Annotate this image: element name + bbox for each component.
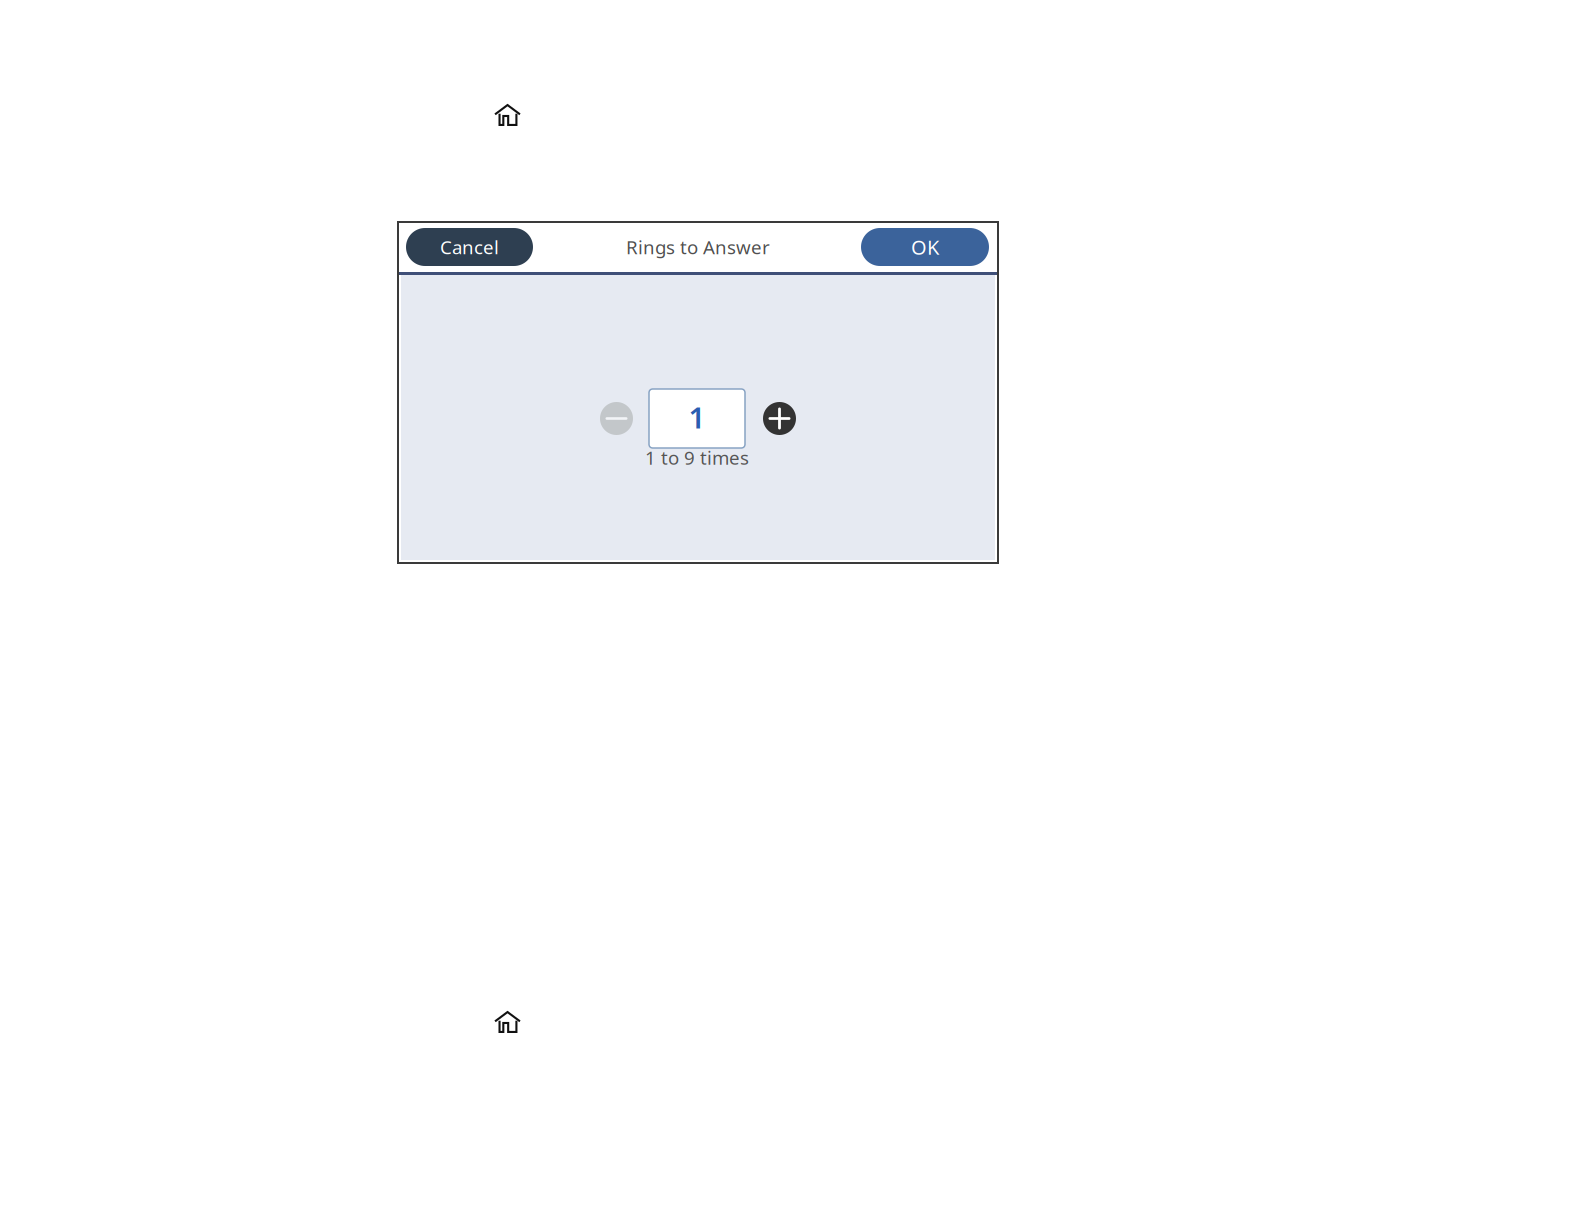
staticText: Rings to Answer <box>626 235 770 259</box>
button[interactable]: Decrease <box>600 402 633 435</box>
staticText: OK <box>911 234 939 260</box>
staticText: 1 to 9 times <box>645 445 749 470</box>
button[interactable]: Increase <box>763 402 796 435</box>
button[interactable]: OK <box>861 228 989 266</box>
staticText: 1 <box>688 397 705 436</box>
button[interactable]: Home <box>494 1011 521 1033</box>
button[interactable]: Cancel <box>406 228 533 266</box>
staticText: Cancel <box>440 235 499 259</box>
button[interactable]: Home <box>494 104 521 126</box>
